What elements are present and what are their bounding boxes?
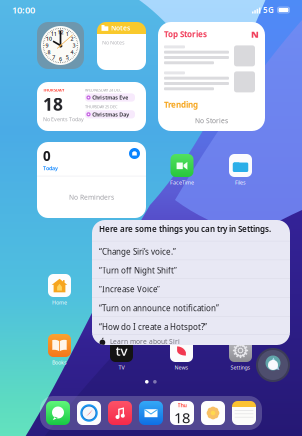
staticText: 11	[51, 30, 57, 37]
button[interactable]: Reminders widget	[37, 142, 146, 218]
staticText: Here are some things you can try in Sett…	[99, 224, 271, 234]
staticText: “Turn on announce notification”	[99, 303, 219, 313]
staticText: 1	[66, 30, 69, 37]
staticText: Learn more about Siri	[110, 337, 180, 346]
staticText: 4	[71, 49, 74, 56]
staticText: 10	[46, 35, 52, 42]
staticText: No Reminders	[69, 193, 114, 202]
button[interactable]: Learn more about Siri	[92, 334, 290, 346]
button[interactable]: “Turn off Night Shift”	[92, 258, 290, 277]
staticText: THURSDAY	[43, 87, 65, 93]
staticText: 3	[72, 42, 75, 49]
staticText: “Change Siri’s voice.”	[99, 246, 176, 257]
button[interactable]: FaceTime	[170, 154, 194, 186]
button[interactable]: Music	[108, 401, 132, 425]
staticText: Top Stories	[164, 29, 207, 39]
staticText: “Turn off Night Shift”	[99, 265, 177, 276]
button[interactable]: Settings	[229, 339, 252, 371]
button[interactable]: “How do I create a Hotspot?”	[92, 315, 290, 333]
staticText: 0	[43, 147, 51, 165]
button[interactable]: Home	[48, 274, 71, 306]
staticText: Christmas Day	[92, 111, 129, 118]
staticText: “Increase Voice”	[99, 284, 160, 294]
staticText: 6	[59, 55, 62, 62]
button[interactable]: Notes	[232, 401, 256, 425]
button[interactable]: Notes widget	[97, 22, 146, 70]
staticText: 18	[43, 93, 63, 116]
staticText: Files	[235, 179, 246, 186]
button[interactable]: Calendar	[170, 401, 194, 425]
staticText: Christmas Eve	[92, 94, 128, 101]
staticText: Thu	[177, 402, 186, 409]
button[interactable]: News	[170, 339, 193, 371]
staticText: No Notes	[102, 39, 125, 46]
staticText: N	[251, 28, 259, 40]
button[interactable]: News widget	[158, 22, 265, 131]
staticText: 12	[57, 29, 63, 36]
staticText: 7	[52, 54, 55, 61]
staticText: tv	[115, 342, 127, 359]
staticText: 2	[71, 35, 74, 42]
staticText: 8	[47, 49, 50, 56]
staticText: 9	[46, 42, 49, 49]
button[interactable]: Files	[229, 154, 252, 186]
staticText: Books	[52, 359, 67, 366]
staticText: Trending	[164, 99, 198, 110]
staticText: FaceTime	[170, 179, 194, 186]
staticText: Settings	[230, 364, 250, 371]
button[interactable]: “Turn on announce notification”	[92, 296, 290, 315]
button[interactable]: Messages	[46, 401, 70, 425]
button[interactable]: Books	[48, 334, 71, 366]
staticText: 5G	[263, 5, 274, 15]
staticText: 10:00	[12, 4, 35, 16]
button[interactable]: “Increase Voice”	[92, 277, 290, 296]
staticText: THURSDAY 25 DEC	[85, 104, 118, 109]
staticText: No Stories	[195, 116, 228, 125]
button[interactable]: “Change Siri’s voice.”	[92, 239, 290, 258]
button[interactable]: Photos	[201, 401, 225, 425]
button[interactable]: Siri	[256, 348, 290, 382]
button[interactable]: Calendar widget	[37, 82, 146, 131]
staticText: Home	[52, 299, 67, 306]
staticText: Notes	[111, 24, 130, 32]
staticText: WEDNESDAY 24 DEC	[85, 87, 122, 93]
button[interactable]: Clock	[37, 22, 84, 69]
staticText: 18	[174, 408, 190, 427]
staticText: 5	[66, 54, 69, 61]
staticText: Today	[43, 165, 58, 172]
staticText: TV	[118, 364, 124, 371]
staticText: No Events Today	[43, 116, 84, 123]
button[interactable]: Safari	[77, 401, 101, 425]
staticText: News	[174, 364, 188, 371]
button[interactable]: Mail	[139, 401, 163, 425]
button[interactable]: TV	[110, 339, 133, 371]
staticText: “How do I create a Hotspot?”	[99, 321, 207, 332]
